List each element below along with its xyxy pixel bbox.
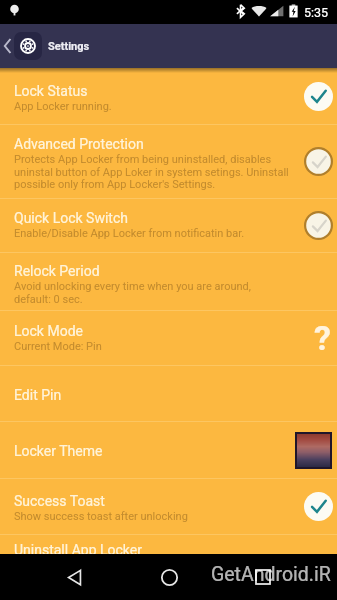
button[interactable]: Success Toast [0, 479, 337, 534]
staticText: Enable/Disable App Locker from notificat… [14, 227, 245, 240]
button[interactable]: Home [146, 554, 192, 600]
staticText: ? [314, 318, 331, 352]
staticText: Relock Period [14, 263, 100, 279]
button[interactable]: Uninstall App Locker [0, 535, 337, 554]
button[interactable]: Disabled [304, 147, 333, 176]
staticText: Success Toast [14, 493, 105, 509]
staticText: 5:35 [304, 5, 329, 20]
staticText: Protects App Locker from being uninstall… [14, 153, 289, 190]
button[interactable]: Enabled [304, 82, 333, 111]
staticText: Uninstall App Locker [14, 542, 142, 558]
button[interactable]: Advanced Protection [0, 125, 337, 198]
staticText: App Locker running. [14, 100, 112, 113]
button[interactable]: Disabled [304, 211, 333, 240]
button[interactable]: Back [52, 554, 98, 600]
staticText: GetAndroid.iR [211, 563, 331, 586]
staticText: Quick Lock Switch [14, 210, 128, 226]
button[interactable]: Lock Status [0, 68, 337, 124]
staticText: Lock Mode [14, 323, 83, 339]
button[interactable]: Help [302, 322, 336, 356]
button[interactable]: Back [0, 24, 14, 68]
staticText: Lock Status [14, 83, 88, 99]
button[interactable]: Relock Period [0, 253, 337, 310]
staticText: Avoid unlocking every time when you are … [14, 280, 289, 305]
staticText: Settings [48, 40, 90, 53]
button[interactable]: Recent apps [240, 554, 286, 600]
button[interactable]: Quick Lock Switch [0, 199, 337, 252]
button[interactable]: Edit Pin [0, 366, 337, 421]
staticText: Show success toast after unlocking [14, 510, 188, 523]
staticText: Edit Pin [14, 387, 62, 403]
button[interactable]: Locker Theme [0, 422, 337, 478]
button[interactable]: Settings [14, 32, 42, 60]
button[interactable]: Theme preview [295, 432, 332, 469]
staticText: Locker Theme [14, 443, 103, 459]
button[interactable]: Enabled [304, 492, 333, 521]
button[interactable]: Lock Mode [0, 311, 337, 365]
staticText: Current Mode: Pin [14, 340, 102, 353]
staticText: Advanced Protection [14, 136, 144, 152]
